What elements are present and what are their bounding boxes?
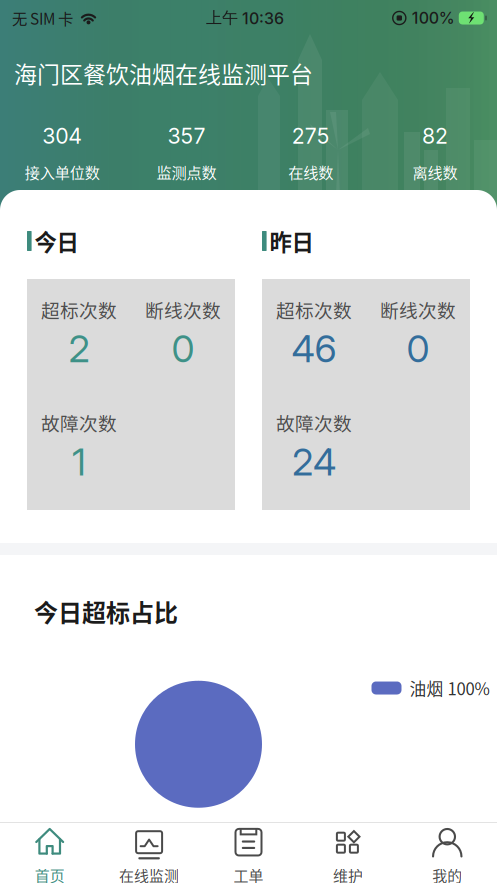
staticText: 首页 bbox=[35, 864, 65, 883]
staticText: 0 bbox=[406, 326, 429, 371]
staticText: 今日 bbox=[35, 225, 79, 257]
staticText: 24 bbox=[292, 439, 336, 484]
staticText: 304 bbox=[42, 123, 82, 149]
staticText: 在线监测 bbox=[119, 864, 179, 883]
staticText: 海门区餐饮油烟在线监测平台 bbox=[14, 56, 313, 90]
staticText: 0 bbox=[171, 326, 194, 371]
staticText: 46 bbox=[291, 326, 336, 371]
button[interactable]: 在线监测 bbox=[99, 823, 199, 883]
staticText: 断线次数 bbox=[145, 296, 221, 323]
staticText: 接入单位数 bbox=[25, 161, 100, 183]
staticText: 2 bbox=[68, 326, 89, 371]
staticText: 工单 bbox=[233, 864, 263, 883]
staticText: 监测点数 bbox=[156, 161, 216, 183]
staticText: 357 bbox=[167, 123, 205, 149]
staticText: 275 bbox=[292, 123, 330, 149]
staticText: 1 bbox=[72, 439, 86, 484]
staticText: 今日超标占比 bbox=[34, 594, 178, 629]
button[interactable]: 工单 bbox=[199, 823, 298, 883]
staticText: 超标次数 bbox=[41, 296, 117, 323]
staticText: 在线数 bbox=[288, 161, 333, 183]
staticText: 离线数 bbox=[412, 161, 457, 183]
staticText: 82 bbox=[422, 123, 448, 149]
staticText: 油烟 100% bbox=[409, 676, 489, 700]
staticText: 维护 bbox=[333, 864, 363, 883]
staticText: 断线次数 bbox=[380, 296, 456, 323]
staticText: 昨日 bbox=[270, 225, 314, 257]
staticText: 超标次数 bbox=[276, 296, 352, 323]
staticText: 故障次数 bbox=[41, 409, 117, 436]
staticText: 我的 bbox=[432, 864, 462, 883]
staticText: 100% bbox=[412, 8, 455, 28]
button[interactable]: 维护 bbox=[298, 823, 398, 883]
button[interactable]: 首页 bbox=[0, 823, 99, 883]
button[interactable]: 我的 bbox=[398, 823, 497, 883]
staticText: 无 SIM 卡 bbox=[12, 7, 73, 29]
staticText: 上午 10:36 bbox=[206, 8, 284, 28]
staticText: 故障次数 bbox=[276, 409, 352, 436]
